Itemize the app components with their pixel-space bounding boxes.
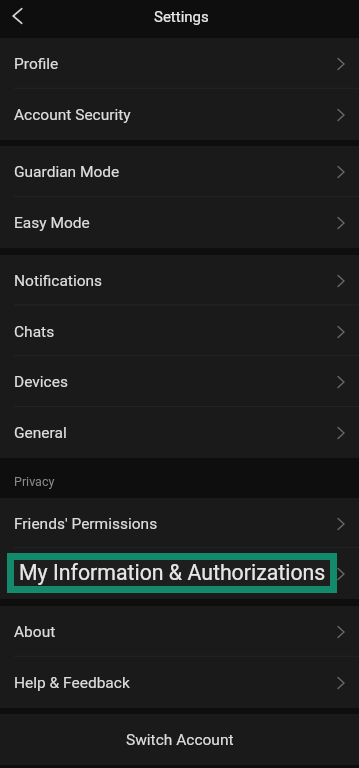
button[interactable]: Easy Mode: [0, 197, 359, 248]
staticText: Settings: [154, 8, 209, 26]
staticText: Chats: [14, 323, 55, 341]
staticText: Profile: [14, 55, 59, 73]
staticText: Devices: [14, 373, 68, 391]
button[interactable]: Profile: [0, 38, 359, 89]
staticText: About: [14, 623, 56, 641]
staticText: Friends' Permissions: [14, 515, 158, 533]
button[interactable]: Friends' Permissions: [0, 498, 359, 549]
staticText: Account Security: [14, 106, 131, 124]
staticText: Privacy: [14, 474, 55, 489]
staticText: Guardian Mode: [14, 163, 120, 181]
staticText: Easy Mode: [14, 214, 90, 232]
button[interactable]: Account Security: [0, 89, 359, 140]
button[interactable]: About: [0, 606, 359, 657]
button[interactable]: Notifications: [0, 255, 359, 306]
staticText: My Information & Authorizations: [19, 560, 326, 585]
staticText: Notifications: [14, 272, 103, 290]
button[interactable]: Switch Account: [0, 714, 359, 765]
staticText: Switch Account: [126, 731, 234, 749]
button[interactable]: Chats: [0, 306, 359, 357]
button[interactable]: Guardian Mode: [0, 146, 359, 197]
staticText: General: [14, 424, 67, 442]
button[interactable]: My Information & Authorizations: [0, 548, 359, 599]
button[interactable]: Back: [0, 0, 34, 31]
staticText: Help & Feedback: [14, 674, 130, 692]
button[interactable]: Devices: [0, 356, 359, 407]
button[interactable]: Help & Feedback: [0, 657, 359, 708]
button[interactable]: General: [0, 407, 359, 458]
